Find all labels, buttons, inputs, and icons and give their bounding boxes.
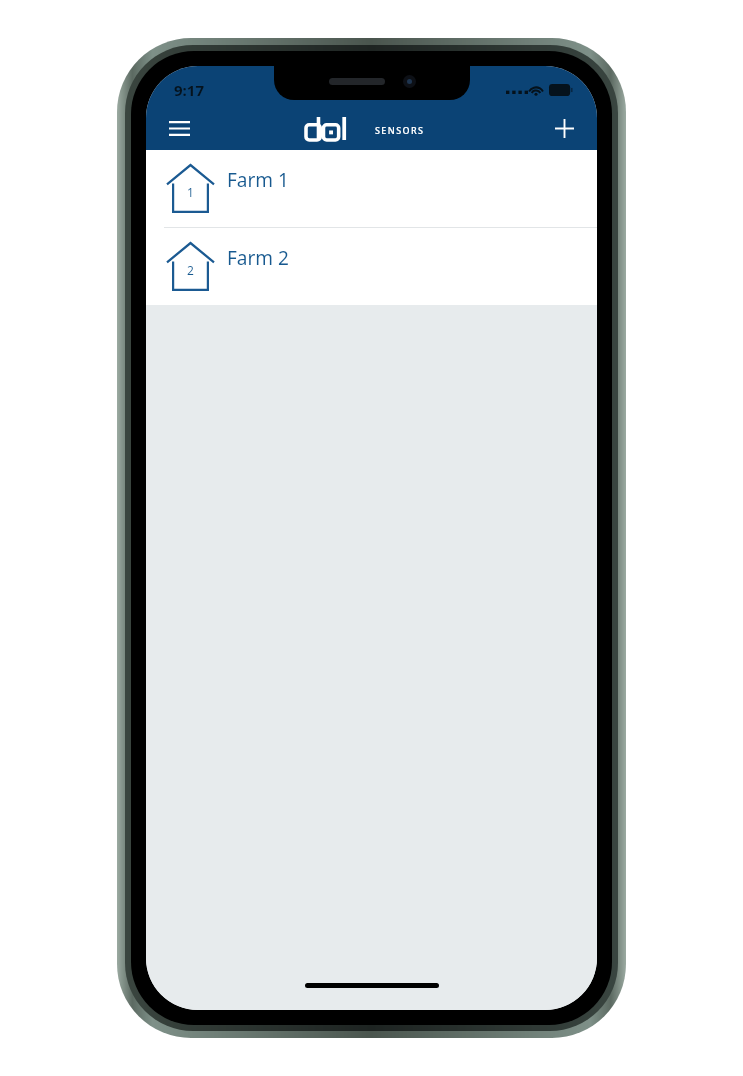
button[interactable]: 1 (146, 150, 597, 227)
button[interactable]: 2 (146, 228, 597, 305)
staticText: 9:17 (174, 80, 204, 100)
staticText: 1 (187, 184, 194, 200)
staticText: Farm 1 (227, 167, 289, 193)
staticText: Farm 2 (227, 245, 289, 271)
button[interactable]: Menu (158, 107, 200, 149)
button[interactable]: Add (543, 107, 585, 149)
staticText: 2 (187, 262, 194, 278)
staticText: SENSORS (375, 124, 425, 136)
